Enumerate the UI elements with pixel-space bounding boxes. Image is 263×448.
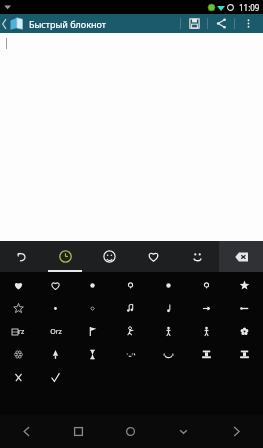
button[interactable]: Emoji [111, 274, 149, 297]
button[interactable]: Forward [210, 415, 263, 448]
button[interactable]: Emoji [37, 366, 74, 389]
button[interactable]: Emoji [74, 274, 111, 297]
button[interactable]: Share [208, 14, 234, 33]
button[interactable]: Hide keyboard [157, 415, 210, 448]
button[interactable]: Home [104, 415, 157, 448]
button[interactable]: Emoji [37, 343, 74, 366]
button[interactable]: Emoji [111, 343, 149, 366]
button[interactable]: Emoji [37, 320, 74, 343]
button[interactable]: More options [235, 14, 261, 33]
button[interactable]: Emoji [225, 343, 263, 366]
staticText: Быстрый блокнот [29, 18, 106, 30]
button[interactable]: Emoji [74, 320, 111, 343]
button[interactable]: Favorites [131, 241, 175, 272]
button[interactable]: Back [0, 415, 52, 448]
button[interactable]: Emoji [149, 320, 187, 343]
button[interactable]: Delete [219, 241, 263, 272]
button[interactable]: Recent emoji [43, 241, 87, 272]
button[interactable]: Recent apps [52, 415, 104, 448]
button[interactable]: Emoji [0, 366, 37, 389]
button[interactable]: Emoji [37, 274, 74, 297]
button[interactable]: Emoji [149, 343, 187, 366]
button[interactable]: Emoji [0, 274, 37, 297]
staticText: Orz [50, 327, 62, 337]
button[interactable]: Emoji [149, 297, 187, 320]
button[interactable]: Navigate up [0, 14, 26, 33]
button[interactable]: Emoji [225, 274, 263, 297]
button[interactable]: Emoji [0, 343, 37, 366]
staticText: rz [18, 327, 25, 337]
staticText: 11:09 [239, 2, 260, 13]
button[interactable]: Emoji [74, 343, 111, 366]
button[interactable]: Emoji [225, 320, 263, 343]
button[interactable]: Emoji [187, 320, 225, 343]
button[interactable]: Emoji [187, 343, 225, 366]
button[interactable]: Emoji [111, 320, 149, 343]
button[interactable]: Emoji [0, 297, 37, 320]
button[interactable]: Save [181, 14, 207, 33]
button[interactable]: People emoji [87, 241, 131, 272]
button[interactable]: Smileys [175, 241, 219, 272]
button[interactable]: Emoji [74, 297, 111, 320]
button[interactable]: Emoji [225, 297, 263, 320]
button[interactable]: Emoji [149, 274, 187, 297]
button[interactable]: Emoji [37, 297, 74, 320]
button[interactable]: Back to keyboard [0, 241, 43, 272]
button[interactable]: Emoji [111, 297, 149, 320]
button[interactable]: Emoji [187, 274, 225, 297]
button[interactable]: Emoji [187, 297, 225, 320]
button[interactable]: Emoji [0, 320, 37, 343]
